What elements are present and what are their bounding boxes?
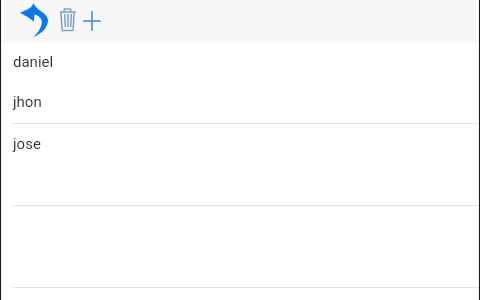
button[interactable]: jose xyxy=(0,124,480,165)
button[interactable]: daniel xyxy=(0,42,480,83)
staticText: jose xyxy=(13,135,41,153)
button[interactable]: Back xyxy=(12,0,56,42)
staticText: daniel xyxy=(13,53,54,71)
button[interactable]: jhon xyxy=(0,83,480,123)
button[interactable]: Add xyxy=(80,0,104,42)
staticText: jhon xyxy=(13,93,42,111)
button[interactable]: Delete xyxy=(56,0,80,42)
